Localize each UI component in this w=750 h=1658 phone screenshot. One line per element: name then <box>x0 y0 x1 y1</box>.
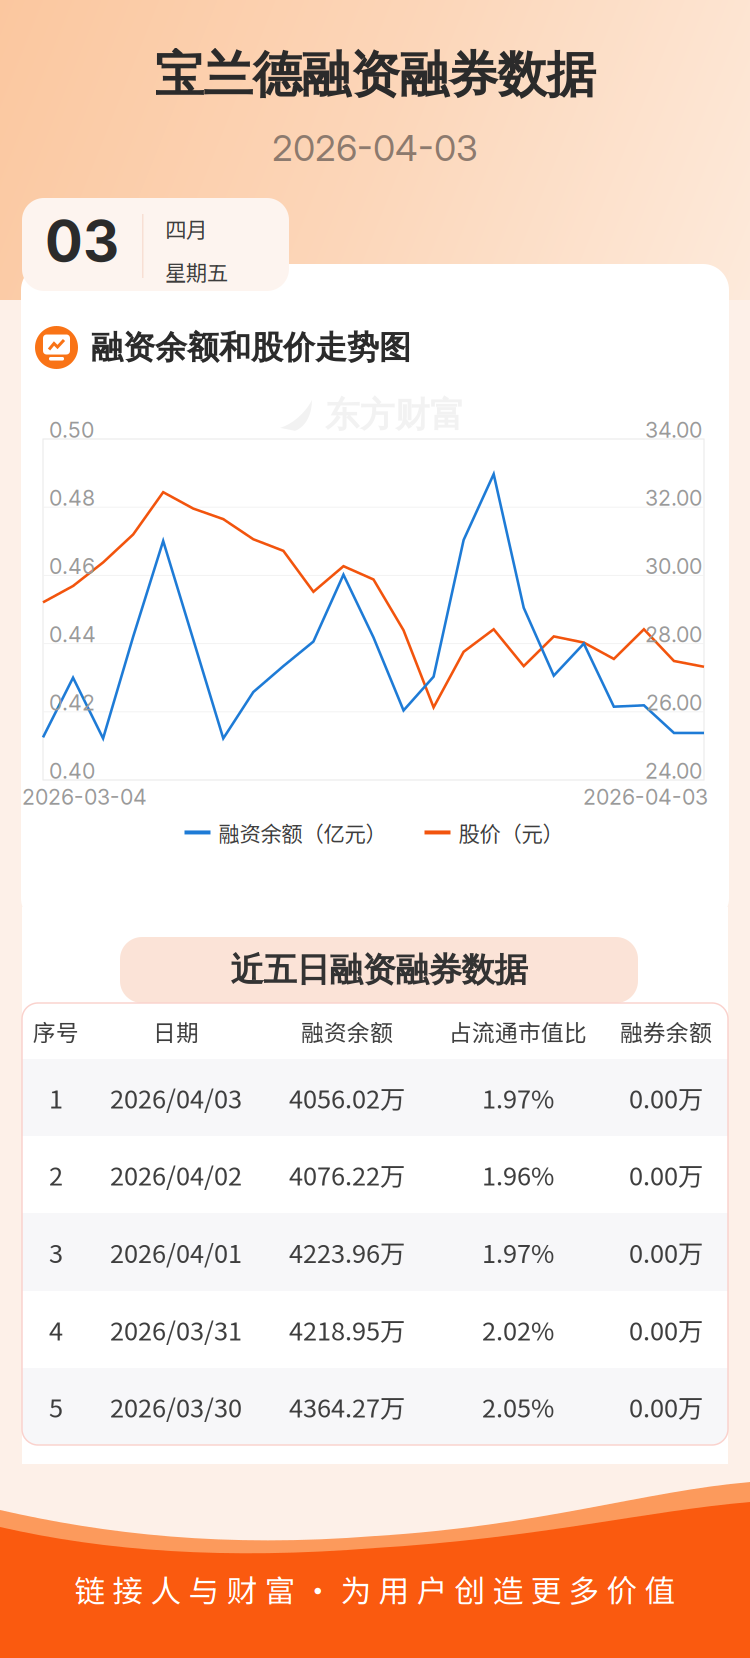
staticText: 4218.95万 <box>289 1311 405 1348</box>
staticText: 0.50 <box>49 417 94 443</box>
staticText: 30.00 <box>645 553 702 579</box>
staticText: 2026/03/30 <box>110 1388 242 1425</box>
staticText: 1.97% <box>482 1234 554 1270</box>
staticText: 2.02% <box>482 1311 554 1348</box>
staticText: 融券余额 <box>620 1015 712 1047</box>
staticText: 1.97% <box>482 1079 554 1116</box>
staticText: 星期五 <box>165 256 228 287</box>
staticText: 0.44 <box>49 622 96 647</box>
staticText: 2026-03-04 <box>22 784 147 810</box>
staticText: 4076.22万 <box>289 1156 405 1193</box>
staticText: 股价（元） <box>458 817 563 848</box>
staticText: 融资余额和股价走势图 <box>91 327 411 368</box>
staticText: 0.00万 <box>629 1079 703 1116</box>
staticText: 2026-04-03 <box>272 126 478 170</box>
staticText: 链接人与财富·为用户创造更多价值 <box>74 1567 675 1611</box>
staticText: 4364.27万 <box>289 1388 405 1425</box>
staticText: 2026-04-03 <box>583 784 708 810</box>
staticText: 0.00万 <box>629 1156 703 1193</box>
staticText: 2026/03/31 <box>110 1311 242 1348</box>
staticText: 24.00 <box>645 758 702 784</box>
staticText: 0.00万 <box>629 1311 703 1348</box>
staticText: 0.00万 <box>629 1234 703 1270</box>
staticText: 32.00 <box>645 485 702 511</box>
staticText: 0.48 <box>49 485 95 511</box>
staticText: 34.00 <box>645 417 702 443</box>
staticText: 占流通市值比 <box>449 1015 587 1047</box>
staticText: 28.00 <box>645 622 702 647</box>
staticText: 0.40 <box>49 758 95 784</box>
staticText: 0.42 <box>49 690 95 716</box>
staticText: 宝兰德融资融券数据 <box>154 44 595 106</box>
staticText: 3 <box>49 1234 63 1270</box>
staticText: 1 <box>49 1079 63 1116</box>
staticText: 5 <box>49 1388 63 1425</box>
staticText: 03 <box>45 207 119 275</box>
staticText: 2026/04/03 <box>110 1079 242 1116</box>
staticText: 近五日融资融券数据 <box>230 949 527 991</box>
staticText: 日期 <box>153 1015 199 1047</box>
staticText: 0.46 <box>49 553 95 579</box>
staticText: 2.05% <box>482 1388 554 1425</box>
staticText: 四月 <box>165 213 207 244</box>
staticText: 1.96% <box>482 1156 554 1193</box>
staticText: 26.00 <box>646 690 702 716</box>
staticText: 融资余额 <box>301 1015 393 1047</box>
staticText: 东方财富 <box>325 393 465 437</box>
staticText: 2 <box>49 1156 63 1193</box>
staticText: 4 <box>49 1311 63 1348</box>
staticText: 2026/04/02 <box>110 1156 242 1193</box>
staticText: 4223.96万 <box>289 1234 405 1270</box>
staticText: 序号 <box>33 1015 79 1047</box>
staticText: 融资余额（亿元） <box>218 817 386 848</box>
staticText: 2026/04/01 <box>110 1234 242 1270</box>
staticText: 4056.02万 <box>289 1079 405 1116</box>
staticText: 0.00万 <box>629 1388 703 1425</box>
